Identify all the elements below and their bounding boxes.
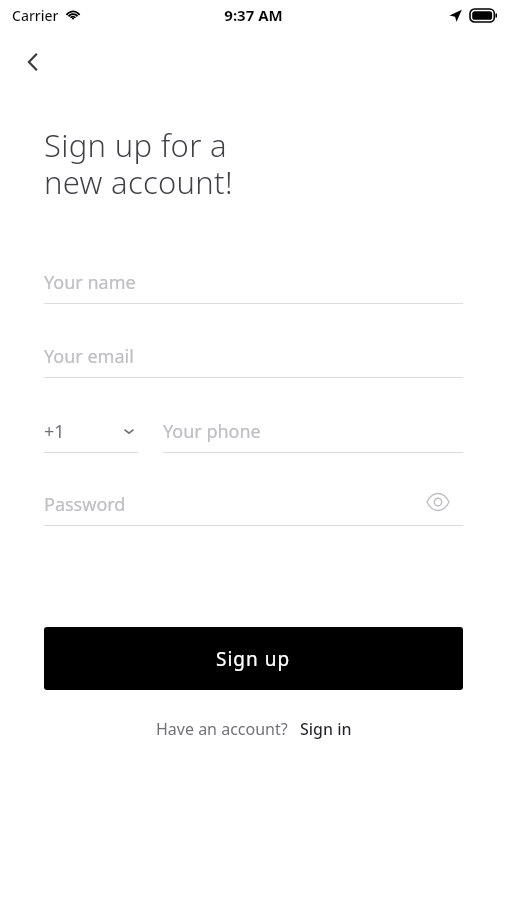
button[interactable]: Show password [420, 484, 456, 520]
button[interactable]: +1 [44, 410, 138, 452]
staticText: Your phone [163, 419, 261, 444]
staticText: Your name [44, 270, 136, 295]
button[interactable]: Password [44, 483, 463, 525]
staticText: Sign up [216, 646, 291, 672]
staticText: 9:37 AM [224, 5, 283, 25]
button[interactable]: Your name [44, 261, 463, 303]
staticText: Your email [44, 344, 134, 369]
staticText: Sign up for a new account! [44, 124, 233, 203]
button[interactable]: Your email [44, 335, 463, 377]
staticText: +1 [44, 419, 65, 444]
button[interactable]: Sign up [44, 627, 463, 690]
staticText: Sign in [300, 718, 352, 740]
staticText: Have an account? [156, 718, 288, 740]
button[interactable]: Your phone [163, 410, 463, 452]
staticText: Carrier [12, 6, 59, 25]
button[interactable]: Back [12, 41, 54, 83]
button[interactable]: Sign in [300, 718, 352, 740]
staticText: Password [44, 492, 126, 517]
